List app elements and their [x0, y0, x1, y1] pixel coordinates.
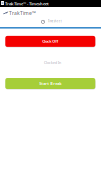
staticText: Start Break — [39, 81, 61, 86]
button[interactable]: Clock Off — [5, 36, 95, 47]
staticText: Timesheet — [48, 19, 62, 23]
button[interactable]: Start Break — [5, 78, 95, 89]
staticText: Clocked In — [44, 60, 61, 65]
staticText: Clock Off — [42, 39, 58, 44]
staticText: TrakTime™ - Timesheet — [5, 1, 49, 6]
staticText: TrakTime™ — [9, 10, 36, 16]
